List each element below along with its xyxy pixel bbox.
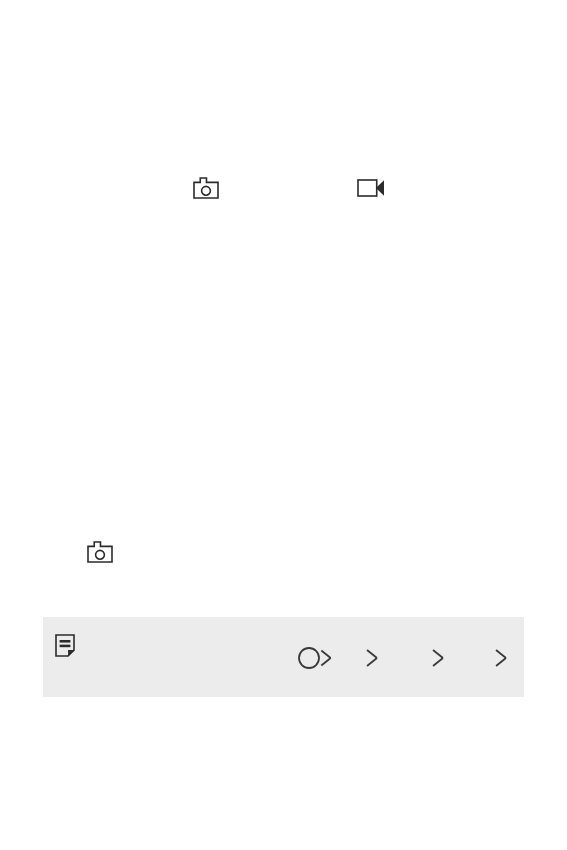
button[interactable]: Next: [490, 645, 512, 671]
button[interactable]: Next: [361, 645, 383, 671]
button[interactable]: Notes: [49, 629, 83, 663]
button[interactable]: Record video: [354, 174, 388, 202]
button[interactable]: Take photo: [82, 536, 118, 568]
button[interactable]: Record: [298, 645, 328, 671]
button[interactable]: Next: [427, 645, 449, 671]
button[interactable]: Take photo: [188, 172, 224, 204]
